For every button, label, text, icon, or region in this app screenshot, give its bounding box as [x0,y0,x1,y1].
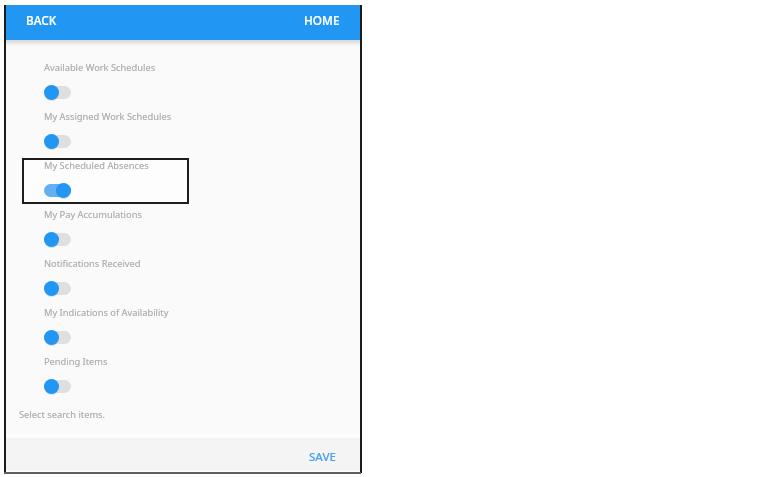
staticText: SAVE [309,449,336,465]
button[interactable]: My Scheduled Absences [22,155,189,201]
staticText: Pending Items [44,355,108,368]
button[interactable]: Toggle off [44,85,71,100]
button[interactable]: My Indications of Availability [22,302,189,348]
button[interactable]: Toggle off [44,379,71,394]
staticText: Notifications Received [44,257,141,270]
button[interactable]: HOME [298,7,346,33]
staticText: My Pay Accumulations [44,208,142,221]
button[interactable]: BACK [20,7,63,33]
button[interactable]: SAVE [302,444,343,470]
staticText: HOME [304,12,340,28]
button[interactable]: Toggle off [44,232,71,247]
staticText: My Indications of Availability [44,306,169,319]
button[interactable]: Toggle off [44,330,71,345]
button[interactable]: Notifications Received [22,253,189,299]
button[interactable]: My Assigned Work Schedules [22,106,189,152]
button[interactable]: My Pay Accumulations [22,204,189,250]
staticText: BACK [26,12,57,28]
staticText: Available Work Schedules [44,61,156,74]
button[interactable]: Toggle off [44,134,71,149]
button[interactable]: Toggle on [44,183,71,198]
button[interactable]: Toggle off [44,281,71,296]
staticText: My Assigned Work Schedules [44,110,172,123]
button[interactable]: Pending Items [22,351,189,397]
staticText: Select search items. [19,408,106,421]
button[interactable]: Available Work Schedules [22,57,189,103]
staticText: My Scheduled Absences [44,159,149,172]
